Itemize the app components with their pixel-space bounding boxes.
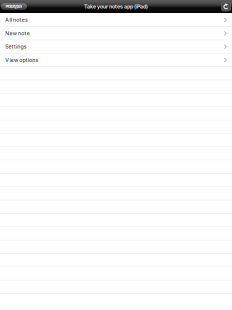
button[interactable]: Refresh [221, 2, 231, 11]
staticText: All notes [5, 17, 28, 23]
staticText: New note [5, 30, 30, 36]
button[interactable]: View options [0, 54, 232, 67]
staticText: Settings [5, 43, 27, 50]
button[interactable]: New note [0, 27, 232, 40]
button[interactable]: Settings [0, 40, 232, 54]
staticText: Prototypes [5, 4, 22, 9]
button[interactable]: All notes [0, 14, 232, 27]
staticText: Take your notes app (iPad) [84, 3, 148, 10]
staticText: View options [5, 57, 38, 63]
button[interactable]: Prototypes [1, 3, 27, 10]
